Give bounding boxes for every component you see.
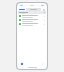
button[interactable] bbox=[18, 11, 46, 14]
button[interactable]: More options bbox=[42, 8, 45, 11]
button[interactable]: Search bbox=[26, 8, 41, 11]
button[interactable]: Settings bbox=[41, 62, 44, 65]
button[interactable] bbox=[18, 22, 46, 26]
button[interactable] bbox=[18, 14, 46, 18]
button[interactable] bbox=[18, 18, 46, 22]
button[interactable]: Back bbox=[19, 8, 25, 11]
button[interactable]: Compose bbox=[20, 62, 23, 65]
